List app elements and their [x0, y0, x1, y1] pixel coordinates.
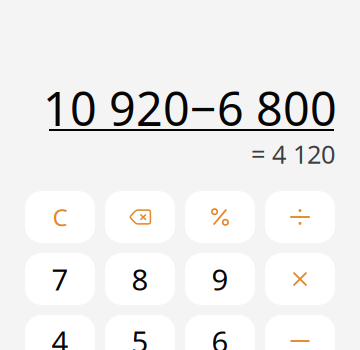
staticText: 9: [211, 259, 228, 298]
staticText: 8: [131, 259, 148, 298]
button[interactable]: 9: [185, 253, 255, 305]
staticText: C: [52, 201, 67, 233]
button[interactable]: Multiply: [265, 253, 335, 305]
staticText: 4: [51, 321, 68, 350]
button[interactable]: Clear: [25, 191, 95, 243]
button[interactable]: 8: [105, 253, 175, 305]
button[interactable]: Delete: [105, 191, 175, 243]
staticText: 6: [211, 321, 228, 350]
button[interactable]: 4: [25, 315, 95, 350]
button[interactable]: Divide: [265, 191, 335, 243]
button[interactable]: Minus: [265, 315, 335, 350]
staticText: 10 920−6 800: [43, 77, 337, 139]
button[interactable]: Percent: [185, 191, 255, 243]
staticText: 5: [131, 321, 148, 350]
button[interactable]: 6: [185, 315, 255, 350]
button[interactable]: 5: [105, 315, 175, 350]
staticText: 7: [51, 259, 68, 298]
button[interactable]: 7: [25, 253, 95, 305]
staticText: = 4 120: [251, 137, 335, 171]
